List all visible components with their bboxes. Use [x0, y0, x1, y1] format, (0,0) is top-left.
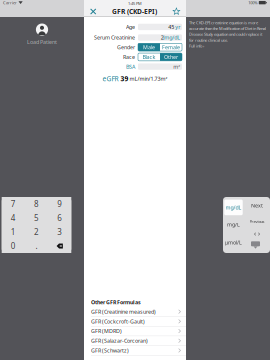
staticText: 4	[11, 213, 16, 223]
button[interactable]: GFR (Salazar-Corcoran)	[84, 336, 186, 346]
button[interactable]: 9	[48, 197, 71, 211]
button[interactable]: 7	[2, 197, 25, 211]
staticText: Age	[126, 23, 135, 30]
staticText: accurate than the Modification of Diet i…	[189, 26, 266, 31]
button[interactable]: 3	[48, 225, 71, 239]
staticText: Race	[123, 53, 135, 60]
staticText: mg/dL	[225, 204, 241, 211]
staticText: mg/dL	[164, 34, 180, 41]
button[interactable]: GFR (Cockcroft-Gault)	[84, 317, 186, 326]
staticText: 1:45 PM	[128, 1, 142, 6]
staticText: 5	[34, 213, 39, 223]
button[interactable]: Hide keyboard	[251, 241, 260, 249]
button[interactable]: mg/dL	[224, 200, 243, 215]
button[interactable]: BSA	[126, 63, 135, 70]
staticText: Full info ›	[189, 43, 204, 48]
button[interactable]: 2	[138, 34, 182, 41]
staticText: Other	[164, 53, 178, 60]
staticText: Carrier	[3, 0, 17, 5]
button[interactable]: GFR (Creatinine measured)	[84, 307, 186, 317]
staticText: 100%	[248, 0, 257, 5]
button[interactable]: Delete	[48, 239, 71, 253]
staticText: 9	[57, 199, 62, 209]
button[interactable]: 8	[25, 197, 48, 211]
staticText: Female	[162, 44, 180, 51]
button[interactable]: Other	[160, 53, 182, 61]
staticText: Next	[251, 202, 263, 209]
button[interactable]: µmol/L	[224, 239, 243, 246]
staticText: Gender	[117, 44, 135, 51]
staticText: Disease Study equation and could replace…	[189, 32, 262, 37]
staticText: Other GFR Formulas	[91, 299, 141, 306]
staticText: 45	[168, 23, 174, 30]
button[interactable]: 0	[2, 239, 25, 253]
staticText: mg/L	[227, 221, 240, 228]
button[interactable]: 45	[138, 24, 182, 30]
staticText: GFR (CKD-EPI)	[112, 7, 157, 16]
staticText: GFR (Salazar-Corcoran)	[91, 337, 148, 344]
button[interactable]: .	[25, 239, 48, 253]
staticText: 2	[34, 227, 39, 237]
button[interactable]: 4	[2, 211, 25, 225]
staticText: The CKD-EPI creatinine equation is more	[189, 20, 258, 25]
staticText: 6	[57, 213, 62, 223]
staticText: for routine clinical use.	[189, 37, 228, 43]
button[interactable]: Favorite	[171, 6, 182, 17]
staticText: GFR (Cockcroft-Gault)	[91, 318, 145, 325]
button[interactable]: Full info ›	[189, 43, 204, 48]
staticText: GFR (MDRD)	[91, 327, 122, 335]
staticText: GFR (Creatinine measured)	[91, 308, 156, 315]
staticText: Previous	[249, 219, 264, 224]
staticText: GFR (Schwartz)	[91, 347, 129, 354]
button[interactable]: 2	[25, 225, 48, 239]
staticText: Serum Creatinine	[94, 34, 135, 41]
staticText: .	[35, 241, 37, 251]
button[interactable]: GFR (MDRD)	[84, 326, 186, 336]
button[interactable]: 5	[25, 211, 48, 225]
button[interactable]: Close	[88, 7, 98, 16]
staticText: ‹ ›	[254, 229, 260, 238]
button[interactable]: Navigate fields	[246, 230, 268, 237]
staticText: yr	[174, 23, 180, 30]
button[interactable]: GFR (Schwartz)	[84, 346, 186, 355]
button[interactable]: Previous	[246, 218, 268, 225]
staticText: 39	[120, 74, 128, 83]
staticText: Male	[143, 44, 155, 51]
staticText: Black	[142, 53, 155, 60]
button[interactable]: Male	[138, 43, 160, 51]
button[interactable]: Black	[138, 53, 160, 61]
staticText: µmol/L	[225, 239, 242, 246]
button[interactable]: Load Patient	[27, 23, 57, 45]
button[interactable]: Female	[160, 43, 182, 51]
staticText: mL/min/1.73m²	[128, 75, 167, 82]
staticText: 1	[11, 227, 16, 237]
staticText: 0	[11, 241, 16, 251]
staticText: 2	[161, 34, 164, 41]
staticText: 3	[57, 227, 62, 237]
staticText: Load Patient	[27, 38, 57, 45]
staticText: 8	[34, 199, 39, 209]
staticText: 7	[11, 199, 16, 209]
button[interactable]: Next	[246, 202, 268, 209]
button[interactable]: 1	[2, 225, 25, 239]
staticText: m²	[173, 63, 180, 70]
staticText: BSA	[126, 63, 135, 70]
staticText: eGFR	[102, 74, 120, 83]
button[interactable]: 6	[48, 211, 71, 225]
button[interactable]: mg/L	[224, 221, 243, 228]
